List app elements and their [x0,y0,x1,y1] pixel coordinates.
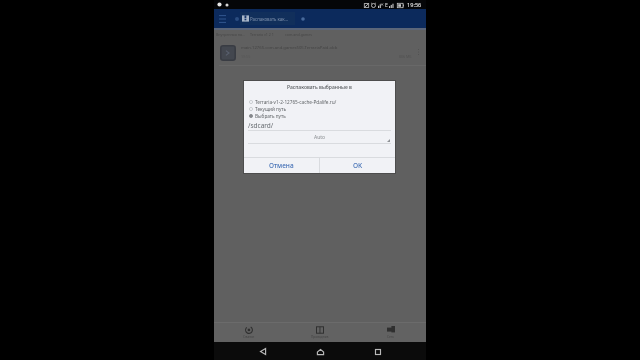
staticText: Сжатие [243,335,255,339]
staticText: E [385,2,388,9]
button[interactable]: Сжатие [214,323,284,342]
staticText: /sdcard/ [248,121,274,130]
staticText: Terraria-v1-2-12765-cache-Pdalife.ru/ [255,99,337,105]
staticText: com.and.games [285,32,312,37]
staticText: Auto [314,134,326,141]
button[interactable]: Recents [369,343,386,360]
button[interactable]: Отмена [244,158,319,173]
staticText: Распаковать выбранные в [287,84,352,91]
button[interactable]: Проводник [284,323,355,342]
staticText: Распаковать как… [250,16,289,22]
staticText: 806 МБ [399,54,412,59]
button[interactable]: Распаковать как… [240,12,295,25]
button[interactable]: Текущий путь [244,105,395,112]
staticText: Отмена [269,161,294,170]
staticText: Сеть [387,335,394,339]
button[interactable]: Back [254,343,271,360]
button[interactable]: Menu [216,9,229,28]
staticText: Текущий путь [255,106,287,112]
staticText: Проводник [311,335,329,339]
staticText: OK [353,161,363,170]
staticText: main.12765.com.and.games505.TerrariaPaid… [241,45,338,51]
button[interactable]: Auto [244,131,395,143]
button[interactable]: Home [312,343,329,360]
button[interactable]: New tab [299,15,307,23]
staticText: 19:56 [407,1,422,9]
staticText: Внутренняя па… [216,32,245,37]
button[interactable]: Сеть [355,323,426,342]
button[interactable]: Terraria-v1-2-12765-cache-Pdalife.ru/ [244,98,395,105]
button[interactable]: main.12765.com.and.games505.TerrariaPaid… [214,39,426,65]
button[interactable]: Выбрать путь [244,112,395,119]
button[interactable]: OK [320,158,395,173]
staticText: Terraria v1 2 1 [250,32,274,37]
button[interactable]: Back [234,9,240,28]
staticText: Выбрать путь [255,113,286,119]
